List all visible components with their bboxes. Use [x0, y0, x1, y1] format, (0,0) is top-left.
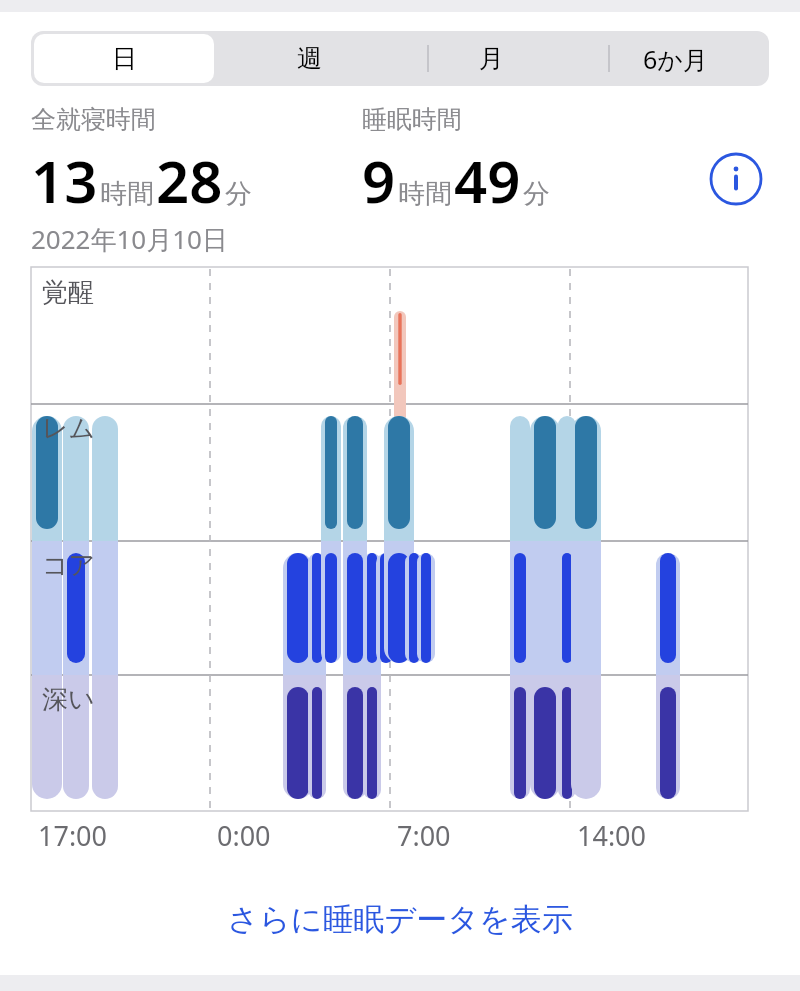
staticText: 6か月 [643, 42, 708, 76]
staticText: 週 [297, 43, 322, 74]
staticText: さらに睡眠データを表示 [227, 900, 573, 939]
staticText: 月 [479, 43, 504, 74]
staticText: 2022年10月10日 [31, 221, 228, 257]
staticText: 7:00 [397, 817, 451, 854]
staticText: 睡眠時間 [362, 104, 462, 135]
button[interactable]: さらに睡眠データを表示 [0, 890, 800, 948]
button[interactable]: 月 [401, 31, 582, 86]
staticText: レム [42, 412, 96, 445]
button[interactable]: 日 [31, 31, 217, 86]
staticText: 全就寝時間 [31, 104, 156, 135]
staticText: 17:00 [38, 817, 108, 854]
staticText: 49 [454, 141, 521, 220]
staticText: 深い [42, 683, 95, 716]
staticText: 覚醒 [42, 276, 94, 309]
staticText: 分 [523, 177, 550, 211]
staticText: 0:00 [217, 817, 271, 854]
staticText: 14:00 [577, 817, 647, 854]
button[interactable]: 週 [217, 31, 401, 86]
staticText: 時間 [398, 177, 452, 211]
button[interactable]: 詳しい情報 [709, 152, 763, 206]
staticText: 13 [31, 141, 98, 220]
staticText: 28 [156, 141, 223, 220]
staticText: コア [42, 549, 96, 582]
staticText: 時間 [100, 177, 154, 211]
button[interactable]: 6か月 [582, 31, 769, 86]
staticText: 日 [112, 43, 137, 74]
staticText: 9 [362, 141, 396, 220]
staticText: 分 [225, 177, 252, 211]
